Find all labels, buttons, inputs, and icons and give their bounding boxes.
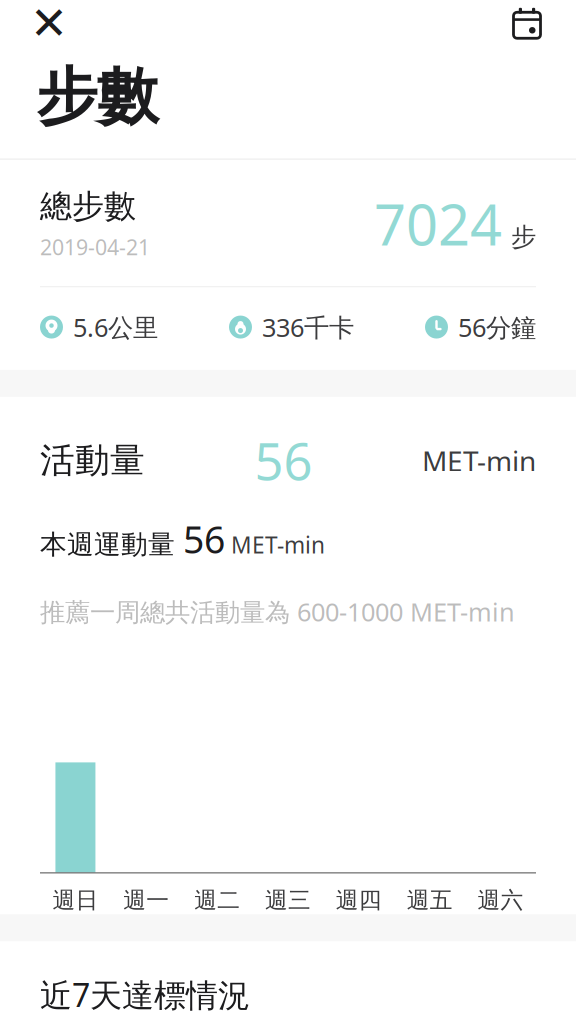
staticText: 336千卡 bbox=[262, 310, 354, 344]
staticText: 7024 bbox=[374, 187, 502, 261]
staticText: 週日 bbox=[52, 886, 98, 914]
staticText: 活動量 bbox=[40, 439, 145, 482]
button[interactable]: Calendar bbox=[492, 0, 562, 49]
staticText: 週三 bbox=[265, 886, 311, 914]
staticText: 56分鐘 bbox=[458, 310, 536, 344]
staticText: 本週運動量 bbox=[40, 528, 183, 561]
staticText: 5.6公里 bbox=[73, 310, 158, 344]
button[interactable]: Close bbox=[14, 0, 84, 49]
staticText: 總步數 bbox=[40, 187, 136, 226]
staticText: 56 bbox=[254, 427, 312, 494]
staticText: ✕ bbox=[30, 0, 68, 49]
staticText: 56 bbox=[183, 514, 225, 564]
staticText: MET-min bbox=[422, 442, 536, 479]
staticText: 週四 bbox=[336, 886, 382, 914]
staticText: 週五 bbox=[407, 886, 453, 914]
staticText: 近7天達標情況 bbox=[40, 973, 250, 1016]
staticText: 2019-04-21 bbox=[40, 233, 150, 261]
staticText: MET-min bbox=[225, 530, 325, 560]
staticText: 週一 bbox=[123, 886, 169, 914]
staticText: 週六 bbox=[478, 886, 524, 914]
staticText: 週二 bbox=[194, 886, 240, 914]
staticText: 步 bbox=[511, 221, 536, 253]
staticText: 步數 bbox=[36, 59, 158, 135]
staticText: 推薦一周總共活動量為 600-1000 MET-min bbox=[40, 595, 515, 628]
